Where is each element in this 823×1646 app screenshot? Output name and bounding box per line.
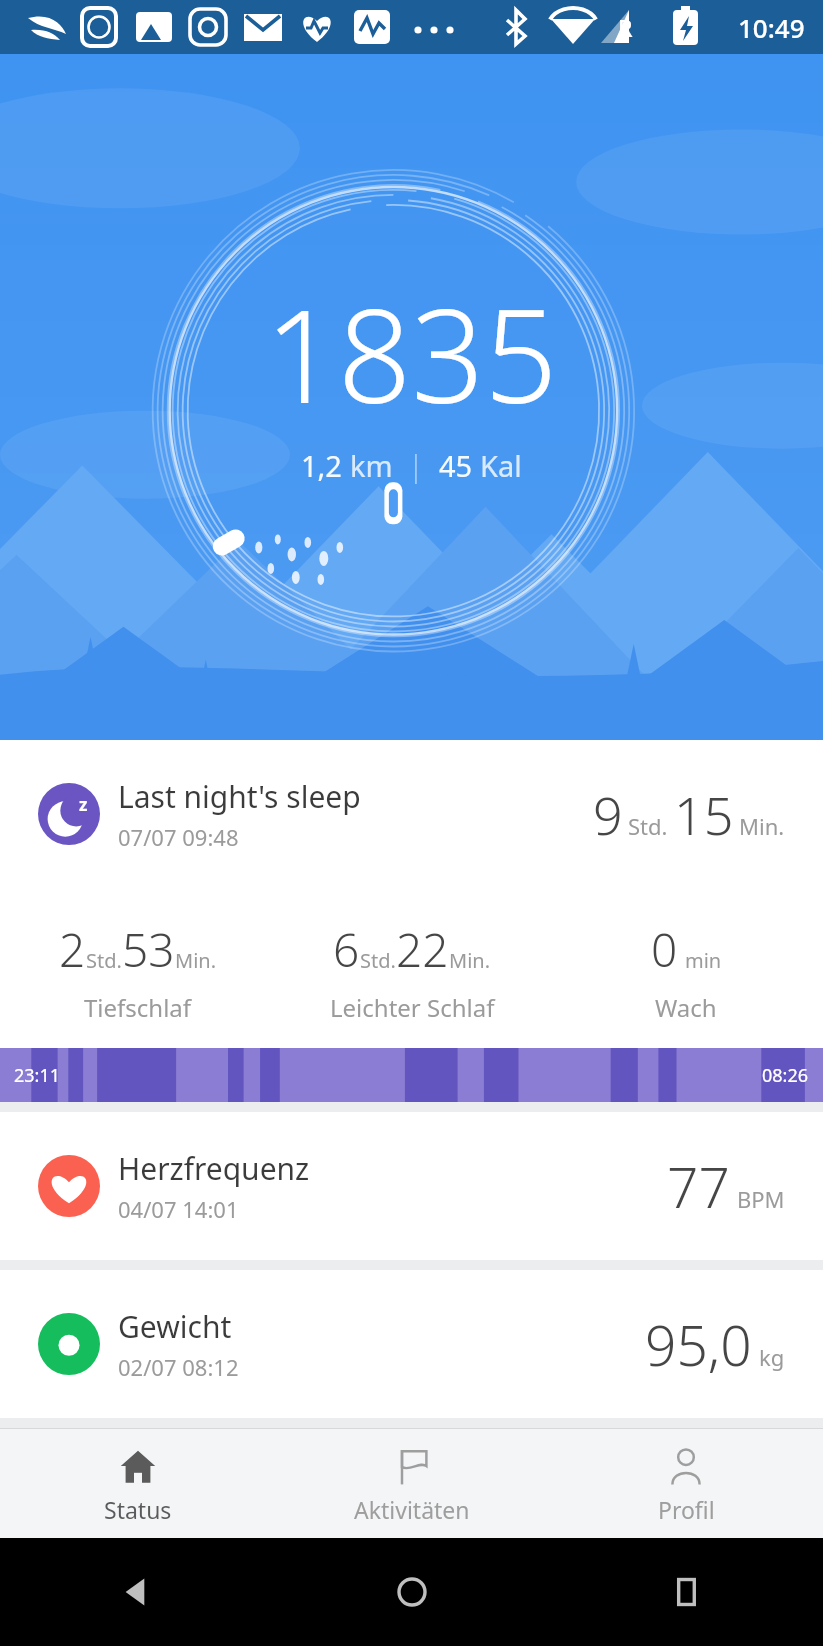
staticText: 22 [396, 918, 449, 981]
button[interactable]: Recents [661, 1566, 713, 1618]
staticText: 08:26 [762, 1063, 809, 1088]
staticText: Min. [449, 947, 491, 974]
staticText: Std. [628, 811, 668, 841]
staticText: Leichter Schlaf [330, 991, 495, 1024]
button[interactable]: 23:11 [0, 1048, 823, 1102]
staticText: min [685, 947, 722, 974]
staticText: Profil [658, 1494, 715, 1525]
staticText: Herzfrequenz [118, 1148, 310, 1189]
staticText: Status [104, 1494, 172, 1525]
staticText: Last night's sleep [118, 776, 361, 817]
staticText: 2 [59, 918, 86, 981]
staticText: Std. [86, 947, 122, 974]
staticText: z [79, 793, 88, 816]
staticText: 07/07 09:48 [118, 822, 239, 852]
button[interactable]: Home [386, 1566, 438, 1618]
button[interactable]: Herzfrequenz [38, 1112, 785, 1260]
staticText: Aktivitäten [354, 1494, 470, 1525]
staticText: kg [759, 1342, 785, 1372]
staticText: 04/07 14:01 [118, 1194, 239, 1224]
staticText: 0 [651, 918, 678, 981]
staticText: 1,2 [301, 446, 350, 485]
staticText: | [393, 446, 439, 485]
staticText: Std. [360, 947, 396, 974]
staticText: Min. [739, 811, 785, 841]
staticText: Gewicht [118, 1306, 232, 1347]
staticText: 1835 [265, 266, 558, 440]
staticText: Wach [655, 991, 717, 1024]
staticText: 6 [333, 918, 360, 981]
staticText: 02/07 08:12 [118, 1352, 239, 1382]
staticText: km [350, 446, 393, 485]
staticText: R [618, 12, 633, 43]
staticText: BPM [737, 1184, 785, 1214]
staticText: Kal [480, 446, 522, 485]
button[interactable]: Profil [549, 1429, 823, 1538]
button[interactable]: Status [0, 1429, 275, 1538]
staticText: 15 [674, 779, 734, 850]
button[interactable]: Aktivitäten [275, 1429, 549, 1538]
staticText: 95,0 [645, 1307, 752, 1382]
staticText: Tiefschlaf [84, 991, 192, 1024]
staticText: 9 [593, 779, 623, 850]
button[interactable]: Back [110, 1566, 162, 1618]
staticText: Min. [175, 947, 217, 974]
staticText: 53 [122, 918, 175, 981]
button[interactable]: Gewicht [38, 1270, 785, 1418]
button[interactable]: z [0, 740, 823, 1102]
staticText: 45 [439, 446, 480, 485]
staticText: 23:11 [14, 1063, 61, 1088]
button[interactable]: 1835 [0, 54, 823, 740]
staticText: 10:49 [738, 10, 805, 45]
staticText: 77 [667, 1149, 730, 1224]
